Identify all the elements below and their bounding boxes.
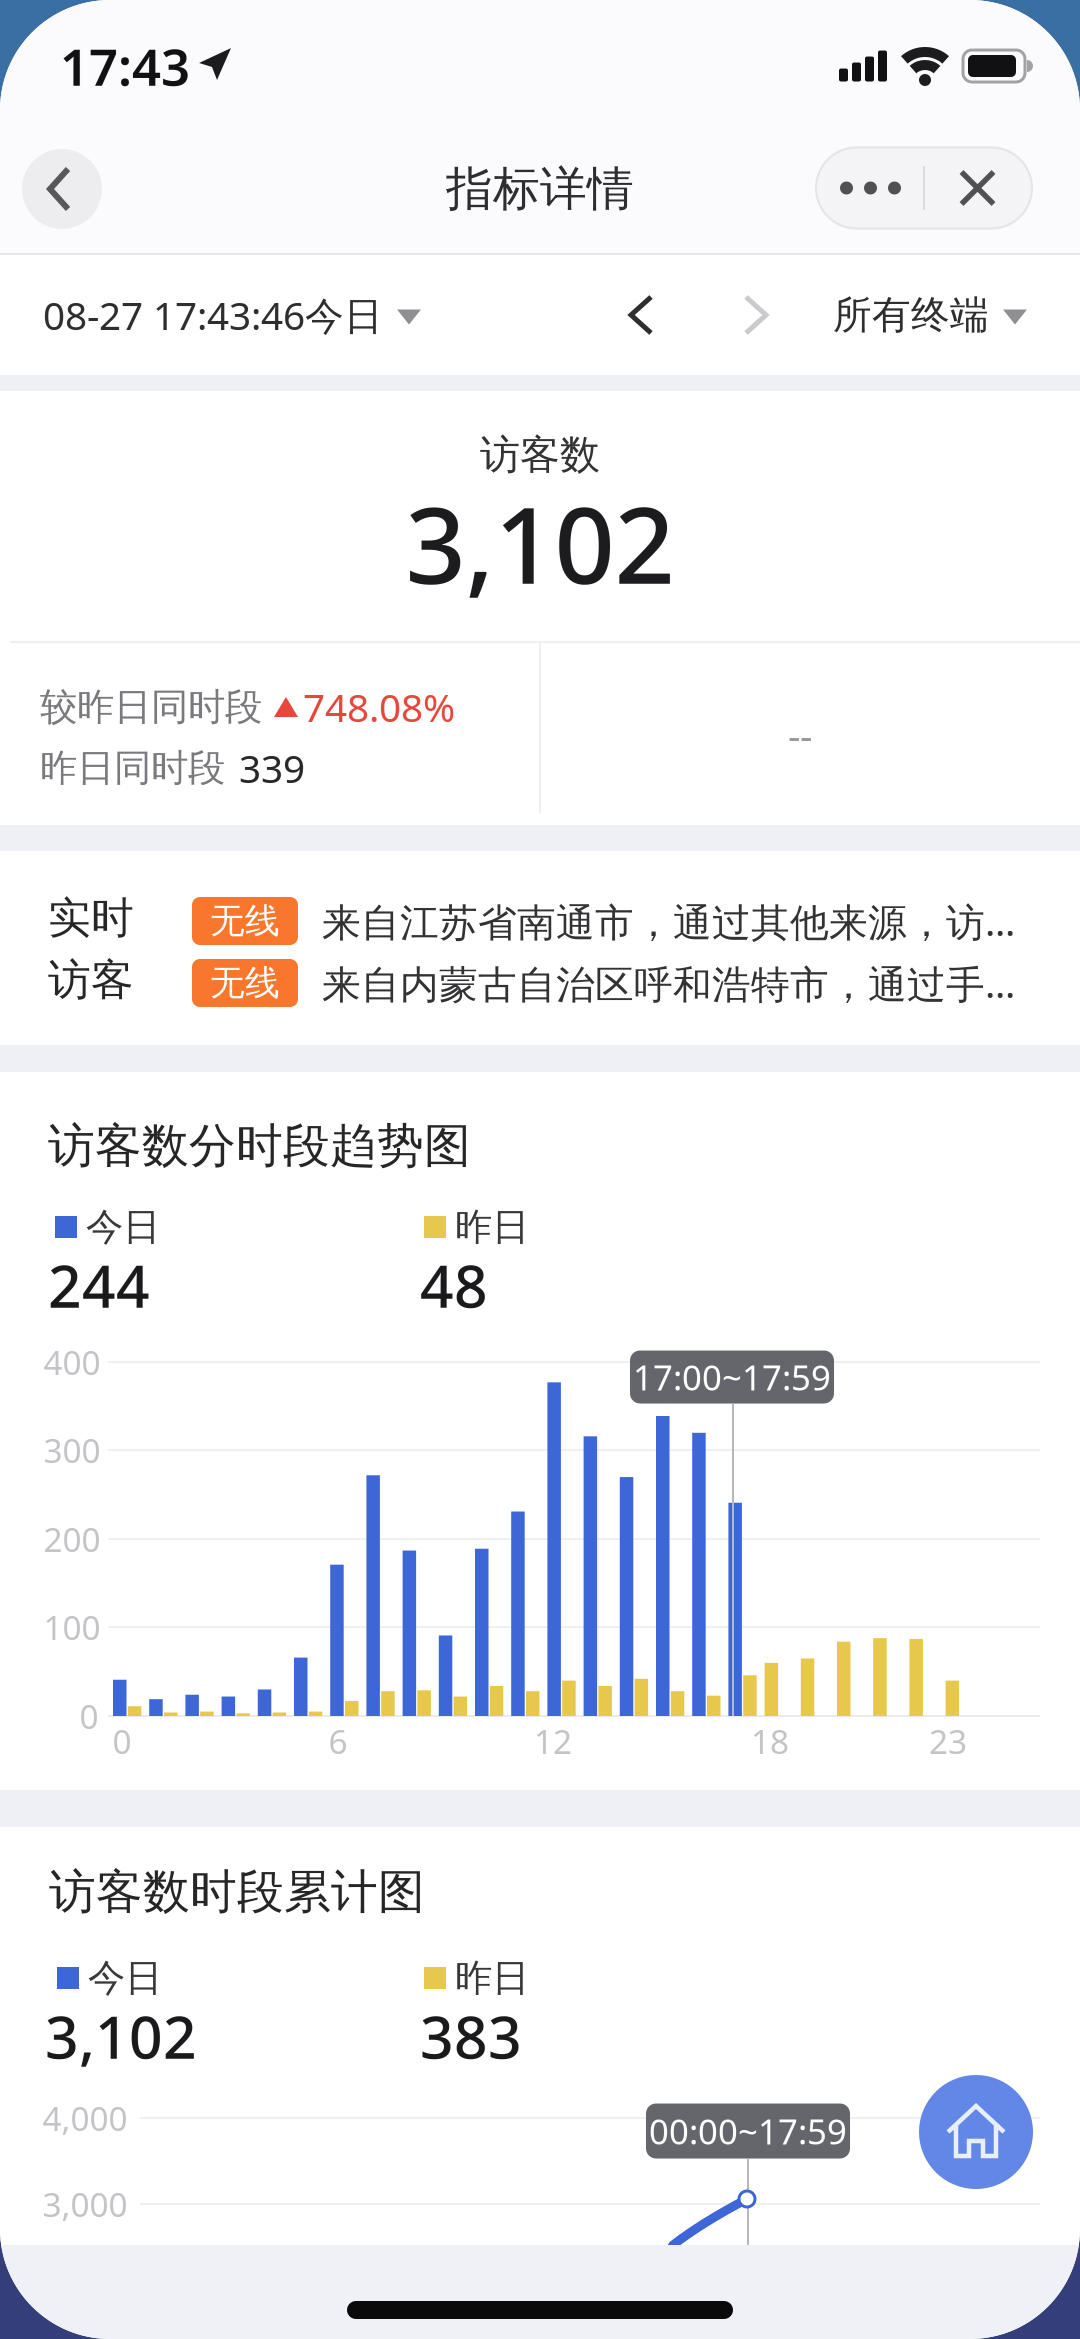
button[interactable] [919, 2075, 1033, 2189]
staticText: 3,000 [42, 2182, 127, 2226]
button[interactable] [619, 285, 663, 345]
staticText: 昨日 [455, 1955, 529, 2001]
staticText: 昨日 [455, 1204, 529, 1250]
staticText: 08-27 17:43:46今日 [43, 289, 383, 341]
staticText: 4,000 [42, 2096, 127, 2140]
staticText: 00:00~17:59 [649, 2108, 847, 2154]
staticText: 23 [929, 1719, 967, 1763]
staticText: 48 [420, 1246, 488, 1324]
staticText: 访客数 [480, 430, 600, 479]
staticText: 339 [239, 742, 305, 794]
staticText: 来自江苏省南通市，通过其他来源，访问了店铺 [322, 895, 1022, 947]
staticText: 244 [48, 1246, 150, 1324]
staticText: 748.08% [303, 681, 455, 733]
staticText: 0 [79, 1694, 98, 1738]
staticText: 17:43 [60, 32, 190, 100]
staticText: 指标详情 [446, 160, 634, 218]
staticText: 来自内蒙古自治区呼和浩特市，通过手淘搜索 [322, 957, 1022, 1009]
staticText: 100 [43, 1605, 100, 1649]
staticText: 3,102 [405, 473, 674, 613]
staticText: 3,102 [45, 1997, 197, 2075]
staticText: 383 [420, 1997, 522, 2075]
staticText: 今日 [88, 1955, 162, 2001]
button[interactable]: 无线 [192, 895, 1022, 947]
staticText: 12 [534, 1719, 572, 1763]
staticText: 访客数分时段趋势图 [48, 1117, 471, 1175]
button[interactable]: 08-27 17:43:46今日 [43, 289, 421, 341]
staticText: 200 [43, 1517, 100, 1561]
staticText: 今日 [86, 1204, 160, 1250]
staticText: 实时 [48, 892, 134, 944]
staticText: 18 [751, 1719, 789, 1763]
staticText: 400 [43, 1340, 100, 1384]
button[interactable] [734, 285, 778, 345]
button[interactable]: 无线 [192, 957, 1022, 1009]
staticText: 无线 [210, 900, 280, 942]
staticText: 17:00~17:59 [633, 1354, 831, 1400]
staticText: 所有终端 [833, 291, 989, 339]
staticText: 0 [112, 1719, 131, 1763]
staticText: 300 [43, 1428, 100, 1472]
staticText: 访客 [48, 954, 134, 1006]
button[interactable]: 所有终端 [833, 291, 1027, 339]
button[interactable] [22, 149, 102, 229]
staticText: 访客数时段累计图 [49, 1863, 425, 1921]
staticText: 较昨日同时段 [40, 684, 262, 730]
staticText: 昨日同时段 [40, 745, 225, 791]
button[interactable] [817, 147, 924, 228]
staticText: 无线 [210, 962, 280, 1004]
staticText: -- [788, 709, 812, 761]
button[interactable] [924, 147, 1031, 228]
staticText: 6 [328, 1719, 347, 1763]
